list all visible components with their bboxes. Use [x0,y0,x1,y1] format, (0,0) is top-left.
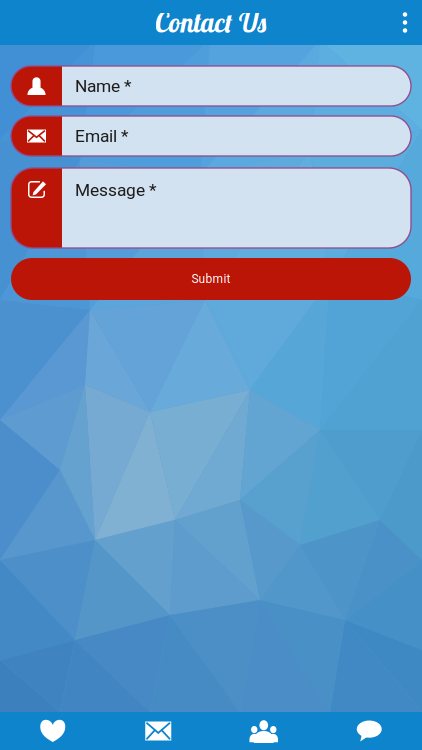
staticText: Message * [75,180,156,200]
button[interactable]: More options [388,0,422,45]
button[interactable]: Contacts [211,712,316,750]
staticText: Name * [75,76,131,96]
button[interactable]: Submit [11,258,411,300]
button[interactable]: Mail [105,712,211,750]
staticText: Contact Us [154,6,267,39]
staticText: Email * [75,126,128,146]
button[interactable]: Favorites [0,712,105,750]
button[interactable]: Chat [316,712,422,750]
staticText: Submit [191,272,230,286]
